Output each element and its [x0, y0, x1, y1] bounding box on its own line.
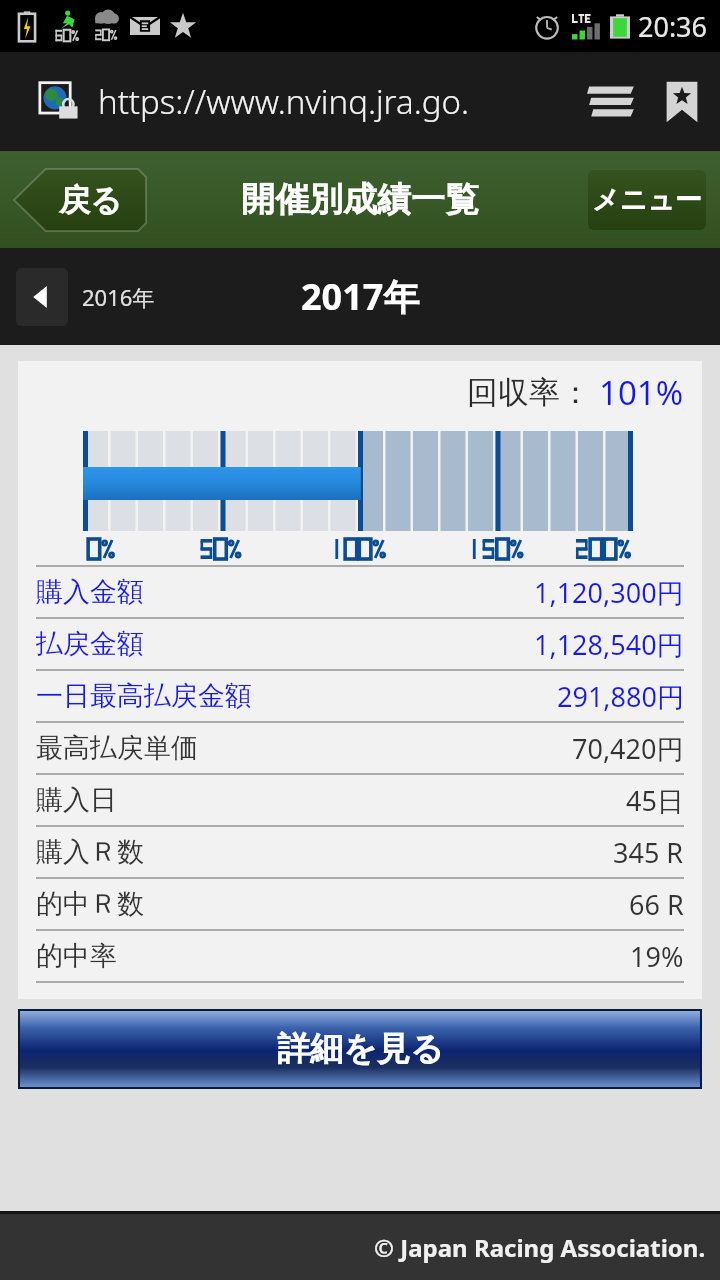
staticText: 購入金額 — [36, 575, 144, 609]
staticText: © Japan Racing Association. — [374, 1231, 706, 1264]
staticText: 19% — [630, 938, 684, 975]
button[interactable]: 詳細を見る — [20, 1011, 700, 1087]
staticText: 的中Ｒ数 — [36, 887, 144, 921]
staticText: 20:36 — [638, 8, 708, 45]
button[interactable]: 一日最高払戻金額 — [36, 671, 684, 721]
staticText: メニュー — [592, 183, 702, 217]
staticText: 一日最高払戻金額 — [36, 679, 252, 713]
staticText: https://www.nvinq.jra.go. — [98, 79, 469, 124]
staticText: 購入日 — [36, 783, 117, 817]
staticText: 2016年 — [82, 282, 155, 312]
staticText: 最高払戻単価 — [36, 731, 198, 765]
button[interactable]: Tabs — [586, 76, 638, 128]
button[interactable]: Site info, secure — [38, 79, 84, 125]
staticText: 345 R — [613, 834, 684, 871]
button[interactable]: メニュー — [588, 170, 706, 230]
staticText: 2017年 — [301, 272, 420, 321]
button[interactable]: Previous year — [16, 268, 155, 326]
button[interactable]: 戻る — [14, 169, 146, 231]
staticText: 66 R — [629, 886, 684, 923]
staticText: 購入Ｒ数 — [36, 835, 144, 869]
staticText: 戻る — [59, 181, 122, 220]
staticText: 70,420円 — [572, 730, 684, 767]
staticText: 的中率 — [36, 939, 117, 973]
button[interactable]: 払戻金額 — [36, 619, 684, 669]
staticText: 払戻金額 — [36, 627, 144, 661]
staticText: 回収率： — [467, 373, 591, 412]
staticText: 101% — [599, 370, 684, 415]
other: Previous year — [16, 268, 68, 326]
button[interactable]: Bookmark — [658, 78, 706, 126]
button[interactable]: 購入金額 — [36, 567, 684, 617]
staticText: 291,880円 — [557, 678, 684, 715]
staticText: 1,120,300円 — [534, 574, 684, 611]
staticText: 開催別成績一覧 — [241, 178, 479, 221]
staticText: 1,128,540円 — [534, 626, 684, 663]
staticText: 45日 — [626, 782, 684, 819]
staticText: 詳細を見る — [277, 1028, 444, 1070]
